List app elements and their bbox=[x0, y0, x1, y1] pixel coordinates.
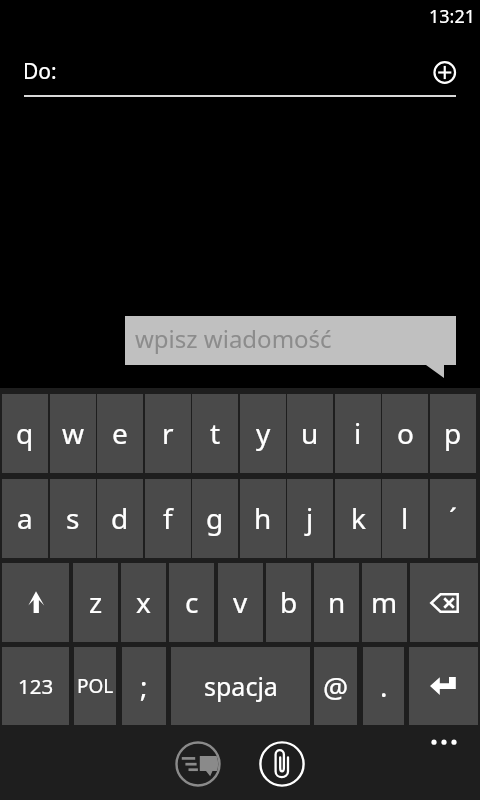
button[interactable]: t bbox=[192, 394, 238, 473]
staticText: w bbox=[62, 414, 85, 452]
staticText: POL bbox=[77, 673, 114, 699]
button[interactable]: r bbox=[145, 394, 191, 473]
button[interactable]: Shift bbox=[2, 563, 69, 642]
button[interactable]: POL bbox=[74, 647, 116, 726]
button[interactable]: 123 bbox=[2, 647, 69, 726]
staticText: spacja bbox=[204, 669, 278, 703]
staticText: v bbox=[233, 583, 248, 621]
button[interactable]: Backspace bbox=[410, 563, 478, 642]
staticText: k bbox=[351, 499, 366, 537]
button[interactable]: m bbox=[362, 563, 407, 642]
staticText: y bbox=[256, 414, 271, 452]
button[interactable]: Do: bbox=[0, 44, 420, 98]
staticText: m bbox=[371, 583, 398, 621]
staticText: Do: bbox=[23, 57, 57, 86]
staticText: x bbox=[136, 583, 151, 621]
button[interactable]: p bbox=[430, 394, 476, 473]
button[interactable]: . bbox=[363, 647, 404, 726]
staticText: 13:21 bbox=[429, 4, 476, 29]
button[interactable]: y bbox=[240, 394, 286, 473]
button[interactable]: More options bbox=[415, 728, 472, 756]
button[interactable] bbox=[125, 316, 456, 378]
button[interactable]: a bbox=[2, 479, 48, 558]
button[interactable]: ; bbox=[122, 647, 166, 726]
button[interactable]: Send message bbox=[172, 738, 224, 790]
button[interactable]: z bbox=[73, 563, 118, 642]
staticText: i bbox=[354, 414, 362, 452]
staticText: r bbox=[162, 414, 174, 452]
staticText: d bbox=[111, 499, 129, 537]
staticText: f bbox=[163, 499, 173, 537]
button[interactable]: Add recipient bbox=[425, 53, 465, 93]
button[interactable]: o bbox=[382, 394, 428, 473]
staticText: s bbox=[66, 499, 80, 537]
staticText: t bbox=[210, 414, 221, 452]
staticText: ´ bbox=[449, 499, 457, 537]
staticText: wpisz wiadomość bbox=[135, 322, 332, 355]
staticText: z bbox=[89, 583, 103, 621]
button[interactable]: i bbox=[335, 394, 381, 473]
button[interactable]: w bbox=[50, 394, 96, 473]
staticText: u bbox=[301, 414, 319, 452]
staticText: q bbox=[16, 414, 34, 452]
button[interactable]: q bbox=[2, 394, 48, 473]
button[interactable]: b bbox=[266, 563, 311, 642]
button[interactable]: v bbox=[218, 563, 263, 642]
staticText: a bbox=[17, 499, 33, 537]
staticText: h bbox=[254, 499, 272, 537]
staticText: ; bbox=[140, 667, 148, 705]
button[interactable]: h bbox=[240, 479, 286, 558]
button[interactable]: ´ bbox=[430, 479, 476, 558]
staticText: o bbox=[397, 414, 414, 452]
button[interactable]: f bbox=[145, 479, 191, 558]
button[interactable]: k bbox=[335, 479, 381, 558]
button[interactable]: Attach bbox=[256, 738, 308, 790]
staticText: g bbox=[206, 499, 224, 537]
button[interactable]: j bbox=[287, 479, 333, 558]
staticText: c bbox=[185, 583, 199, 621]
staticText: e bbox=[112, 414, 128, 452]
staticText: 123 bbox=[18, 672, 54, 700]
button[interactable]: spacja bbox=[171, 647, 310, 726]
staticText: n bbox=[328, 583, 346, 621]
staticText: p bbox=[444, 414, 462, 452]
button[interactable]: @ bbox=[314, 647, 357, 726]
button[interactable]: x bbox=[121, 563, 166, 642]
button[interactable]: d bbox=[97, 479, 143, 558]
staticText: j bbox=[306, 499, 314, 537]
button[interactable]: g bbox=[192, 479, 238, 558]
button[interactable]: s bbox=[50, 479, 96, 558]
button[interactable]: u bbox=[287, 394, 333, 473]
button[interactable]: l bbox=[382, 479, 428, 558]
staticText: @ bbox=[323, 668, 349, 706]
staticText: l bbox=[401, 499, 409, 537]
staticText: . bbox=[380, 667, 388, 705]
button[interactable]: c bbox=[169, 563, 214, 642]
staticText: b bbox=[280, 583, 298, 621]
button[interactable]: n bbox=[314, 563, 359, 642]
button[interactable]: e bbox=[97, 394, 143, 473]
button[interactable]: Enter bbox=[409, 647, 478, 726]
